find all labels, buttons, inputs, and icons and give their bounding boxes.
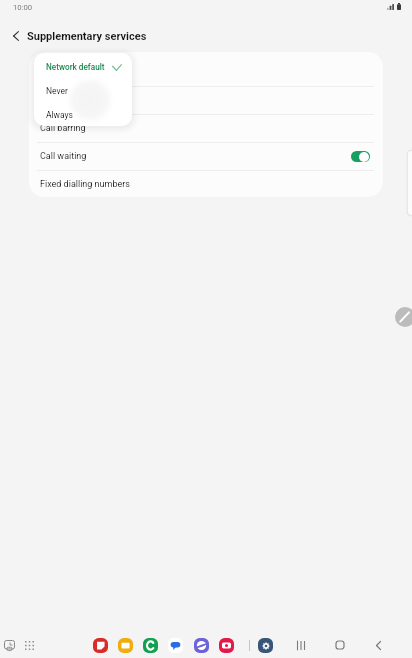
button[interactable]: Network default xyxy=(34,55,132,79)
button[interactable]: My Files xyxy=(118,638,133,653)
button[interactable]: Samsung Notes xyxy=(93,638,108,653)
button[interactable]: Edit xyxy=(395,307,412,327)
staticText: Call barring xyxy=(40,123,86,134)
button[interactable]: Caller ID xyxy=(29,52,383,86)
button[interactable]: Call barring xyxy=(29,115,383,142)
staticText: Network default xyxy=(46,62,105,72)
button[interactable]: Never xyxy=(34,79,132,103)
staticText: Never xyxy=(46,86,68,96)
staticText: Fixed dialling numbers xyxy=(40,179,130,190)
button[interactable]: Fixed dialling numbers xyxy=(29,171,383,197)
button[interactable]: Apps xyxy=(25,641,34,650)
staticText: Caller ID xyxy=(40,64,74,75)
staticText: Call forwarding xyxy=(40,95,101,106)
button[interactable]: Navigate up xyxy=(5,25,27,47)
staticText: Supplementary services xyxy=(27,30,147,43)
button[interactable]: Call waiting xyxy=(29,143,383,170)
button[interactable]: Recent apps panel xyxy=(4,640,15,651)
button[interactable]: Messages xyxy=(168,638,183,653)
staticText: Call waiting xyxy=(40,151,87,162)
button[interactable]: Back xyxy=(370,637,386,653)
button[interactable]: Always xyxy=(34,103,132,126)
button[interactable]: Call forwarding xyxy=(29,87,383,114)
staticText: Always xyxy=(46,110,73,120)
button[interactable]: Recents xyxy=(293,637,309,653)
button[interactable]: Contacts xyxy=(143,638,158,653)
button[interactable]: Internet xyxy=(194,638,209,653)
button[interactable]: Home xyxy=(332,637,348,653)
button[interactable]: Camera xyxy=(219,638,234,653)
button[interactable]: Settings xyxy=(258,638,273,653)
staticText: 10:00 xyxy=(13,3,33,12)
